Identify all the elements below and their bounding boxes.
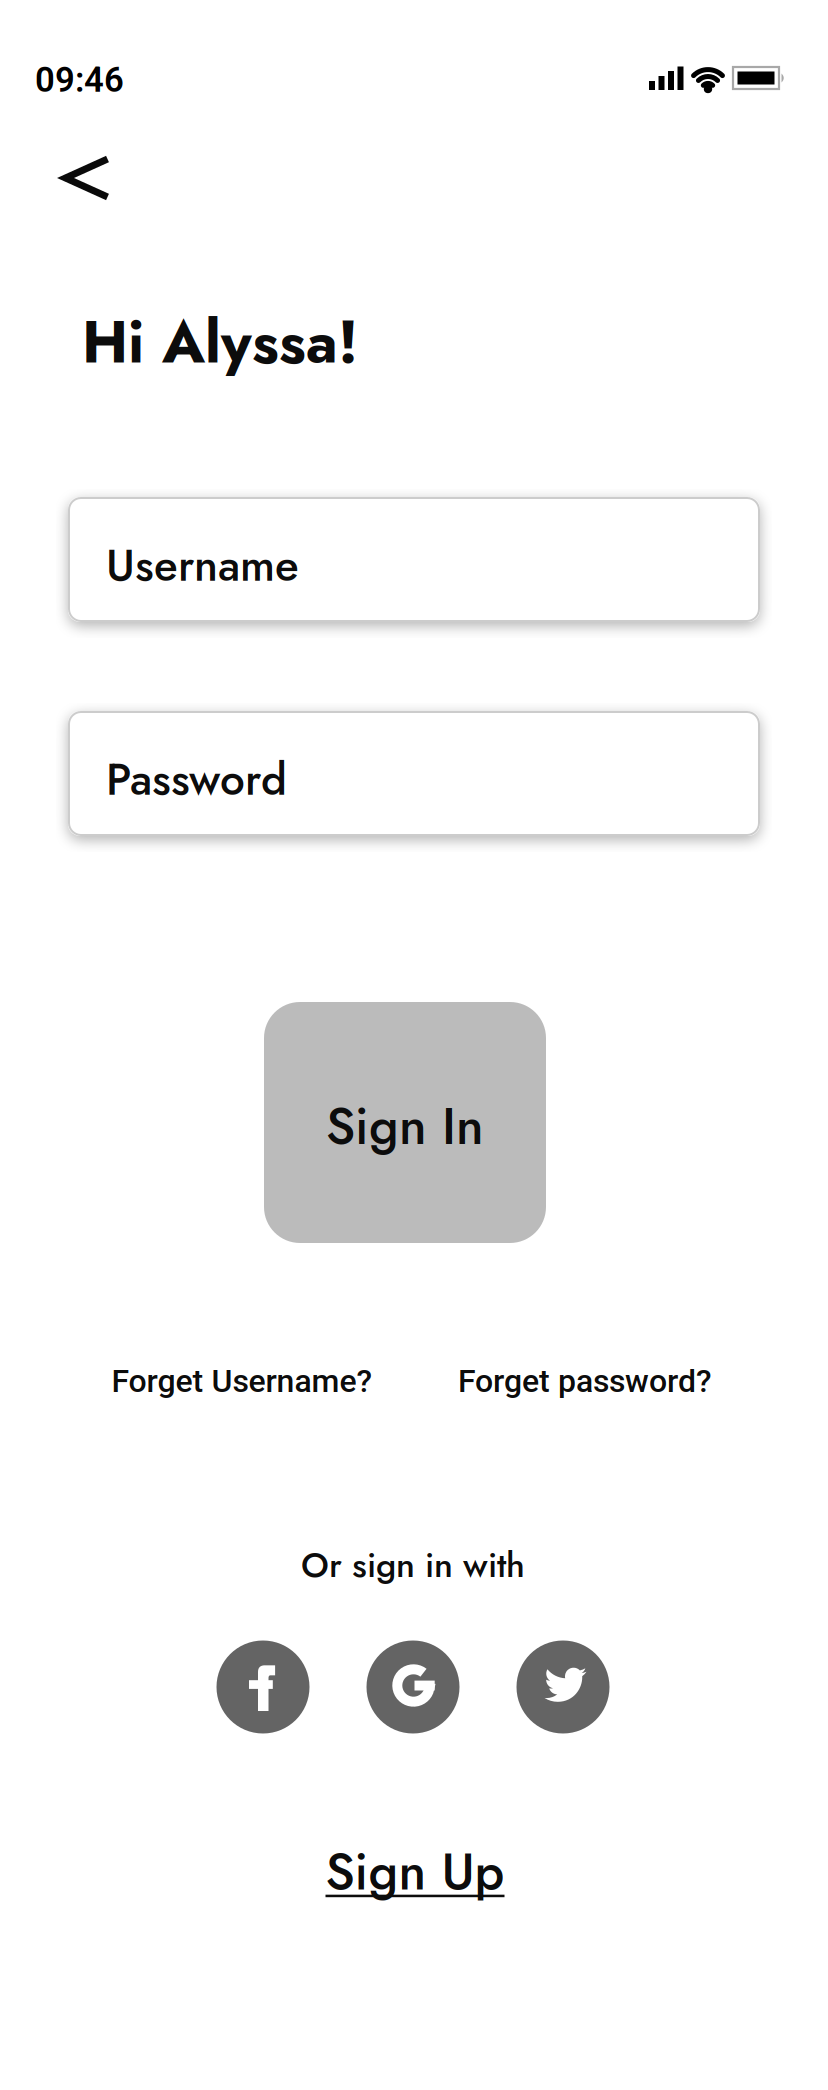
button[interactable]: Back	[61, 155, 111, 200]
button[interactable]: Password	[68, 711, 760, 836]
staticText: Sign In	[326, 1090, 484, 1163]
button[interactable]: Forget Username?	[111, 1362, 372, 1400]
button[interactable]: Sign in with Google	[366, 1640, 459, 1733]
button[interactable]: Sign in with Facebook	[216, 1640, 309, 1733]
button[interactable]: Forget password?	[458, 1362, 712, 1400]
staticText: 09:46	[35, 60, 124, 100]
staticText: Password	[106, 748, 287, 811]
button[interactable]: Username	[68, 497, 760, 622]
staticText: Or sign in with	[301, 1540, 525, 1590]
staticText: Forget Username?	[111, 1362, 372, 1400]
staticText: Username	[106, 534, 299, 597]
button[interactable]: Sign In	[264, 1002, 546, 1243]
button[interactable]: Sign Up	[325, 1835, 504, 1909]
button[interactable]: Sign in with Twitter	[516, 1640, 609, 1733]
staticText: Hi Alyssa!	[82, 300, 358, 384]
staticText: Sign Up	[325, 1835, 504, 1909]
staticText: Forget password?	[458, 1362, 712, 1400]
